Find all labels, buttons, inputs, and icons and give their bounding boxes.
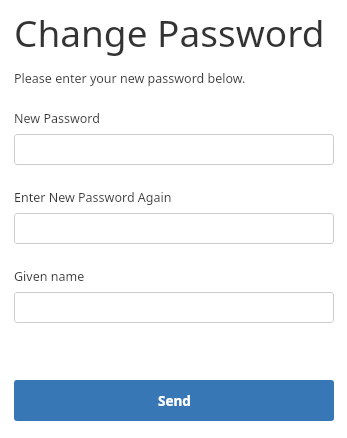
button[interactable] [14, 292, 334, 323]
staticText: Enter New Password Again [14, 189, 172, 206]
button[interactable] [14, 134, 334, 165]
staticText: New Password [14, 110, 100, 127]
staticText: Change Password [14, 7, 325, 57]
staticText: Please enter your new password below. [14, 70, 246, 87]
staticText: Given name [14, 268, 85, 285]
button[interactable]: Send [14, 380, 334, 421]
staticText: Send [158, 392, 191, 410]
button[interactable] [14, 213, 334, 244]
